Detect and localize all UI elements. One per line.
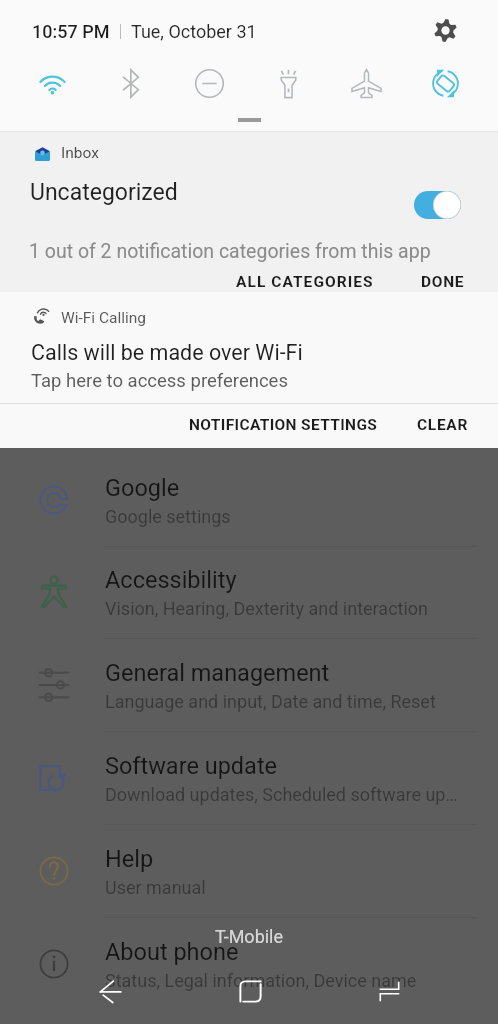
staticText: General management [105, 659, 330, 687]
staticText: Tap here to access preferences [31, 370, 288, 392]
staticText: Language and input, Date and time, Reset [105, 691, 436, 712]
staticText: Wi-Fi Calling [61, 309, 147, 327]
staticText: T-Mobile [0, 926, 498, 947]
button[interactable]: Recents [356, 963, 422, 1019]
staticText: 10:57 PM [32, 21, 110, 42]
button[interactable]: DONE [421, 273, 465, 291]
staticText: Help [105, 845, 154, 873]
staticText: ALL CATEGORIES [236, 273, 374, 291]
button[interactable]: Home [217, 963, 283, 1019]
button[interactable]: Bluetooth [106, 56, 157, 108]
button[interactable]: Airplane mode [341, 56, 392, 108]
button[interactable]: Do not disturb [184, 56, 235, 108]
staticText: DONE [421, 273, 465, 291]
button[interactable]: Auto rotate [420, 56, 471, 108]
staticText: User manual [105, 877, 206, 898]
button[interactable]: Flashlight [263, 56, 314, 108]
button[interactable]: CLEAR [417, 416, 469, 434]
button[interactable]: Accessibility [0, 546, 498, 639]
button[interactable]: ALL CATEGORIES [236, 273, 374, 291]
button[interactable]: Help [0, 825, 498, 918]
staticText: Google settings [105, 506, 231, 527]
button[interactable]: Google [0, 454, 498, 547]
staticText: 1 out of 2 notification categories from … [29, 240, 431, 263]
staticText: Uncategorized [30, 179, 178, 206]
staticText: Download updates, Scheduled software up… [105, 784, 458, 805]
staticText: About phone [105, 938, 239, 966]
button[interactable]: Toggle Uncategorized [407, 184, 467, 226]
staticText: NOTIFICATION SETTINGS [189, 416, 378, 434]
button[interactable]: Software update [0, 732, 498, 825]
button[interactable]: General management [0, 639, 498, 732]
button[interactable]: Back [77, 963, 143, 1019]
button[interactable]: Wi-Fi [27, 56, 78, 108]
staticText: Accessibility [105, 566, 237, 594]
staticText: CLEAR [417, 416, 469, 434]
staticText: Calls will be made over Wi-Fi [31, 340, 303, 365]
staticText: Status, Legal information, Device name [105, 970, 417, 991]
staticText: Inbox [61, 144, 99, 162]
staticText: Tue, October 31 [131, 21, 257, 42]
button[interactable]: NOTIFICATION SETTINGS [189, 416, 378, 434]
staticText: Google [105, 474, 180, 502]
staticText: Software update [105, 752, 278, 780]
staticText: Vision, Hearing, Dexterity and interacti… [105, 598, 429, 619]
button[interactable]: Settings [425, 10, 465, 50]
button[interactable]: About phone [0, 918, 498, 1011]
